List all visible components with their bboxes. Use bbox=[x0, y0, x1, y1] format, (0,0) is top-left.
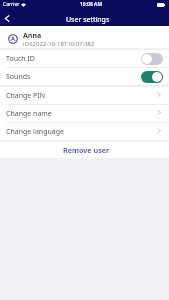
staticText: Carrier bbox=[3, 1, 20, 8]
button[interactable]: Touch ID bbox=[6, 50, 163, 67]
staticText: 10:08 AM bbox=[80, 1, 103, 8]
staticText: Sounds bbox=[6, 72, 31, 82]
button[interactable]: Change name bbox=[6, 105, 161, 122]
staticText: Touch ID bbox=[6, 54, 35, 64]
staticText: Change PIN bbox=[6, 91, 46, 101]
staticText: iOS2022-10-18T10:07:38Z bbox=[23, 40, 95, 48]
button[interactable]: Back bbox=[0, 11, 14, 26]
staticText: Change language bbox=[6, 127, 64, 137]
button[interactable]: Sounds bbox=[6, 68, 163, 85]
button[interactable]: Change PIN bbox=[6, 87, 161, 104]
staticText: User settings bbox=[66, 15, 110, 25]
button[interactable]: Change language bbox=[6, 123, 161, 140]
staticText: Remove user bbox=[63, 145, 110, 155]
button[interactable]: Remove user bbox=[0, 142, 169, 158]
staticText: Change name bbox=[6, 109, 52, 119]
staticText: Anna bbox=[23, 31, 42, 41]
button[interactable]: Anna bbox=[8, 28, 163, 50]
